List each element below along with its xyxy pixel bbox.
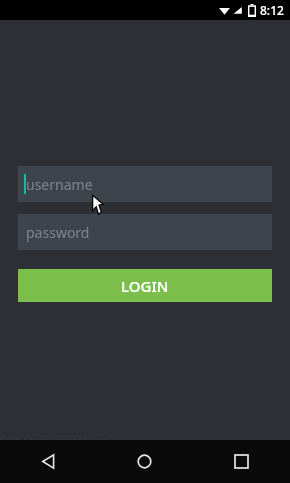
staticText: free for personal use — [0, 433, 108, 448]
staticText: 8:12 — [260, 2, 284, 18]
button[interactable]: LOGIN — [18, 269, 272, 302]
staticText: LOGIN — [121, 276, 169, 296]
button[interactable]: Recent apps — [193, 440, 290, 483]
staticText: username — [26, 175, 93, 194]
button[interactable]: password — [18, 214, 272, 250]
staticText: password — [26, 223, 90, 242]
button[interactable]: Back — [0, 440, 96, 483]
button[interactable]: username — [18, 166, 272, 202]
button[interactable]: Home — [96, 440, 193, 483]
